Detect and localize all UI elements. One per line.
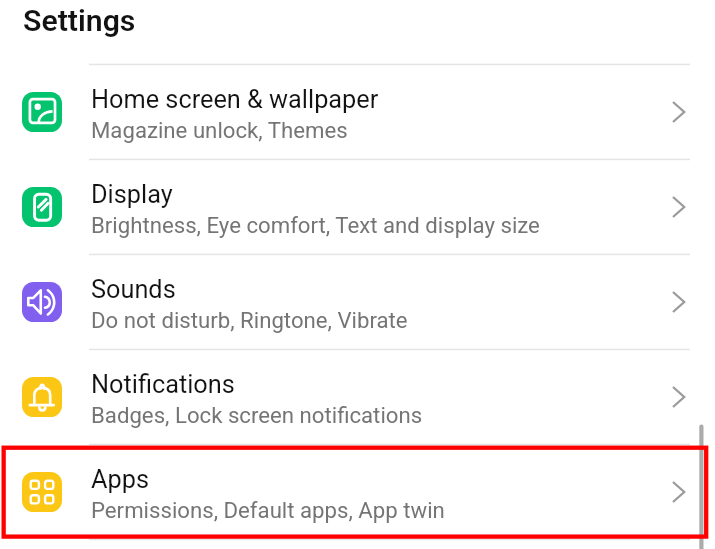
button[interactable]: Display [0, 159, 715, 254]
staticText: Permissions, Default apps, App twin [91, 497, 445, 523]
staticText: Apps [91, 465, 149, 495]
other: Open Display [668, 195, 692, 219]
staticText: Home screen & wallpaper [91, 85, 379, 115]
button[interactable]: Apps [0, 444, 715, 539]
staticText: Display [91, 180, 173, 210]
staticText: Magazine unlock, Themes [91, 117, 348, 143]
staticText: Notifications [91, 370, 235, 400]
button[interactable]: Home screen & wallpaper [0, 64, 715, 159]
staticText: Badges, Lock screen notifications [91, 402, 423, 428]
other: Open Notifications [668, 385, 692, 409]
other: Open Sounds [668, 290, 692, 314]
staticText: Do not disturb, Ringtone, Vibrate [91, 307, 408, 333]
staticText: Brightness, Eye comfort, Text and displa… [91, 212, 540, 238]
other: Open Home screen & wallpaper [668, 100, 692, 124]
staticText: Settings [23, 3, 136, 38]
staticText: Sounds [91, 275, 176, 305]
button[interactable]: Sounds [0, 254, 715, 349]
button[interactable]: Notifications [0, 349, 715, 444]
other: Open Apps [668, 480, 692, 504]
